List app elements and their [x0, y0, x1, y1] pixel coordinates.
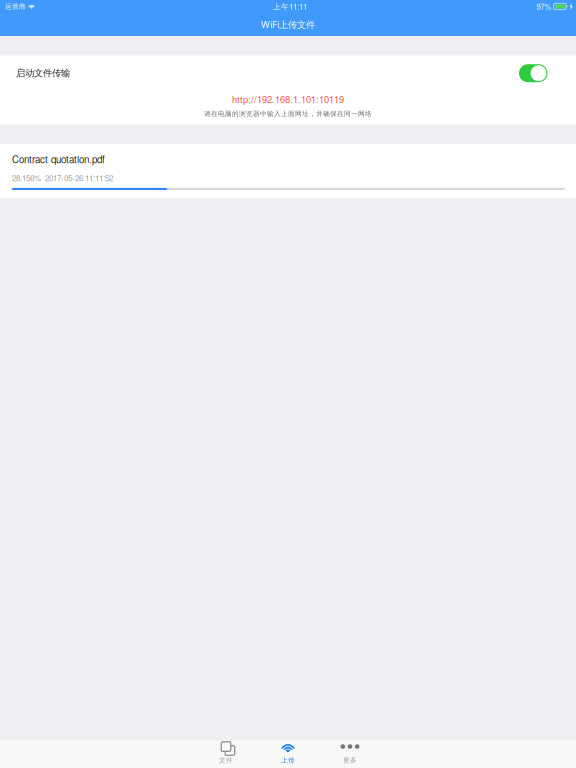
- staticText: 启动文件传输: [16, 67, 70, 79]
- button[interactable]: 上传: [257, 739, 319, 768]
- button[interactable]: http://192.168.1.101:10119: [232, 92, 344, 106]
- button[interactable]: 文件: [195, 739, 257, 768]
- staticText: 请在电脑的浏览器中输入上面网址，并确保在同一网络: [204, 110, 372, 118]
- staticText: Contract quotation.pdf: [12, 152, 105, 166]
- button[interactable]: 更多: [319, 739, 381, 768]
- staticText: http://192.168.1.101:10119: [232, 92, 344, 106]
- staticText: 上午11:11: [273, 1, 307, 12]
- staticText: 上传: [281, 756, 295, 764]
- button[interactable]: 启动文件传输: [0, 54, 576, 92]
- button[interactable]: 启动文件传输: [519, 64, 547, 82]
- button[interactable]: Contract quotation.pdf: [0, 144, 576, 198]
- staticText: 97%: [536, 1, 551, 12]
- staticText: WiFi上传文件: [261, 18, 315, 31]
- staticText: 运营商: [5, 2, 26, 11]
- staticText: 文件: [219, 756, 233, 764]
- staticText: 更多: [343, 756, 357, 764]
- staticText: 28.156% 2017-05-26 11:11:52: [12, 172, 113, 183]
